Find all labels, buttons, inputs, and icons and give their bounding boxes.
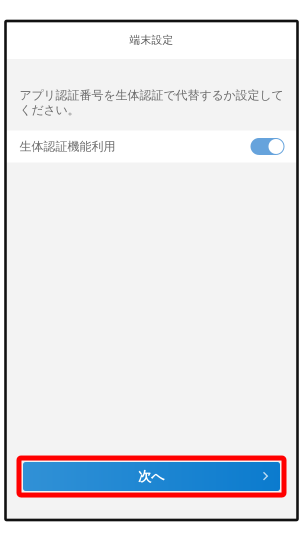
staticText: アプリ認証番号を生体認証で代替するか設定してください。 bbox=[19, 88, 283, 117]
staticText: 生体認証機能利用 bbox=[19, 139, 115, 154]
staticText: 次へ bbox=[138, 468, 165, 485]
staticText: 端末設定 bbox=[129, 33, 173, 46]
button[interactable]: 次へ bbox=[19, 458, 284, 495]
button[interactable]: 生体認証機能利用 bbox=[5, 130, 297, 162]
